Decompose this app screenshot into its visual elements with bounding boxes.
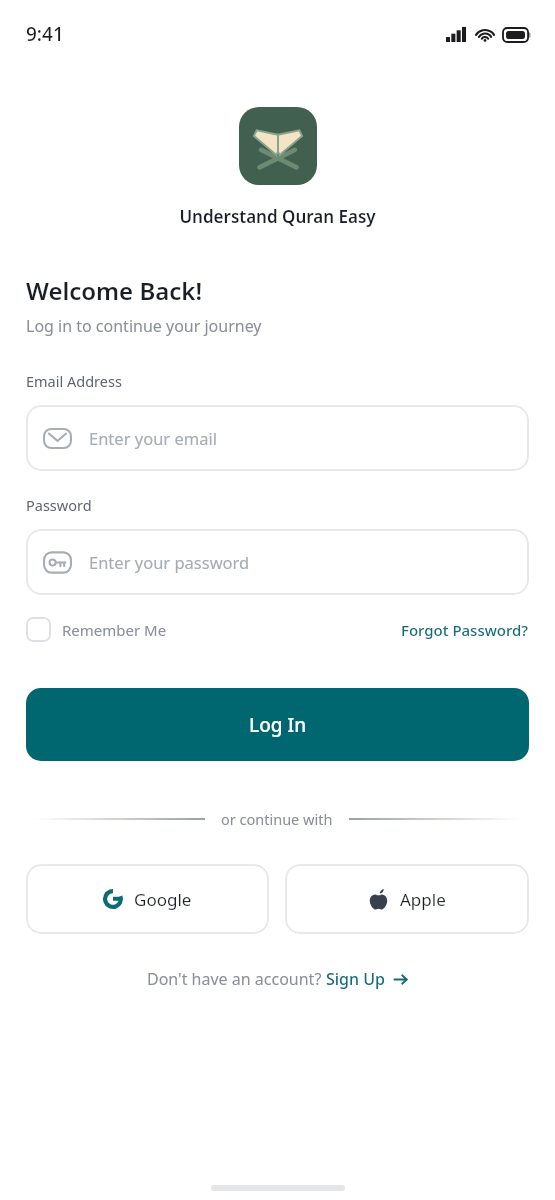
button[interactable]: Forgot Password? bbox=[401, 620, 529, 640]
button[interactable]: Apple bbox=[285, 864, 529, 934]
staticText: Password bbox=[26, 495, 92, 515]
staticText: Apple bbox=[400, 888, 446, 911]
button[interactable]: Log In bbox=[26, 688, 529, 761]
staticText: Don't have an account? bbox=[147, 968, 326, 990]
staticText: Understand Quran Easy bbox=[179, 205, 376, 228]
staticText: Google bbox=[134, 888, 192, 911]
staticText: Forgot Password? bbox=[401, 620, 529, 640]
button[interactable]: Sign Up bbox=[326, 968, 409, 990]
staticText: Remember Me bbox=[62, 620, 167, 640]
staticText: Enter your email bbox=[89, 427, 217, 449]
staticText: Sign Up bbox=[326, 968, 385, 990]
staticText: Email Address bbox=[26, 371, 122, 391]
staticText: Log in to continue your journey bbox=[26, 315, 262, 337]
staticText: Enter your password bbox=[89, 551, 250, 573]
staticText: Welcome Back! bbox=[26, 274, 203, 307]
staticText: Log In bbox=[249, 712, 307, 738]
other: Sign Up bbox=[392, 971, 409, 988]
staticText: or continue with bbox=[221, 809, 333, 829]
staticText: 9:41 bbox=[26, 21, 64, 47]
button[interactable]: Enter your email bbox=[26, 405, 529, 471]
button[interactable]: Remember Me bbox=[26, 617, 171, 642]
button[interactable]: Google bbox=[26, 864, 269, 934]
button[interactable]: Enter your password bbox=[26, 529, 529, 595]
